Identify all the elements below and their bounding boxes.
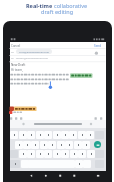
button[interactable] — [65, 141, 73, 149]
button[interactable] — [53, 131, 61, 139]
staticText: collaborative — [54, 2, 88, 9]
button[interactable] — [44, 150, 52, 158]
staticText: Hi team, — [11, 68, 23, 72]
button[interactable] — [19, 150, 27, 158]
button[interactable] — [94, 141, 101, 148]
staticText: To — [11, 50, 14, 53]
staticText: New Draft — [11, 63, 26, 67]
button[interactable]: Send — [94, 44, 102, 48]
button[interactable]: Cancel — [11, 44, 21, 48]
button[interactable] — [44, 131, 52, 139]
button[interactable] — [70, 150, 78, 158]
button[interactable] — [87, 150, 95, 158]
button[interactable] — [61, 131, 69, 139]
button[interactable] — [86, 131, 94, 139]
button[interactable] — [10, 120, 106, 128]
staticText: Cc — [11, 56, 14, 59]
button[interactable] — [78, 150, 86, 158]
button[interactable] — [69, 131, 77, 139]
button[interactable] — [31, 141, 39, 149]
button[interactable] — [23, 141, 31, 149]
button[interactable]: chris@exampleemail.com — [16, 49, 52, 54]
button[interactable] — [36, 131, 44, 139]
button[interactable] — [40, 141, 48, 149]
staticText: chris@exampleemail.com — [19, 50, 50, 53]
button[interactable] — [78, 131, 86, 139]
button[interactable] — [19, 131, 27, 139]
button[interactable] — [48, 141, 56, 149]
button[interactable] — [74, 141, 82, 149]
staticText: draft editing — [41, 8, 74, 15]
button[interactable] — [82, 141, 90, 149]
button[interactable] — [53, 150, 61, 158]
button[interactable] — [10, 131, 18, 139]
button[interactable] — [15, 141, 23, 149]
staticText: Cancel — [11, 44, 21, 48]
staticText: jordan@exampleemail.com — [16, 56, 49, 59]
button[interactable] — [27, 150, 35, 158]
button[interactable] — [75, 160, 83, 168]
button[interactable] — [10, 160, 20, 168]
button[interactable] — [36, 150, 44, 158]
button[interactable] — [57, 141, 65, 149]
staticText: Send — [94, 44, 102, 48]
button[interactable] — [27, 131, 35, 139]
staticText: Real-time — [26, 2, 54, 9]
button[interactable] — [61, 150, 69, 158]
